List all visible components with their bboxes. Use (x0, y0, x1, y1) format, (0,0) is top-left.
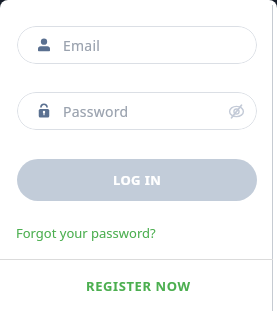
button[interactable]: Forgot your password? (16, 224, 156, 242)
staticText: Password (63, 102, 129, 121)
staticText: Email (63, 36, 101, 55)
button[interactable]: Password (17, 92, 257, 130)
staticText: LOG IN (113, 171, 162, 189)
button[interactable]: Email (17, 26, 257, 64)
button[interactable] (229, 104, 244, 119)
button[interactable]: REGISTER NOW (0, 270, 277, 302)
button[interactable]: LOG IN (17, 159, 257, 201)
staticText: REGISTER NOW (86, 277, 191, 295)
